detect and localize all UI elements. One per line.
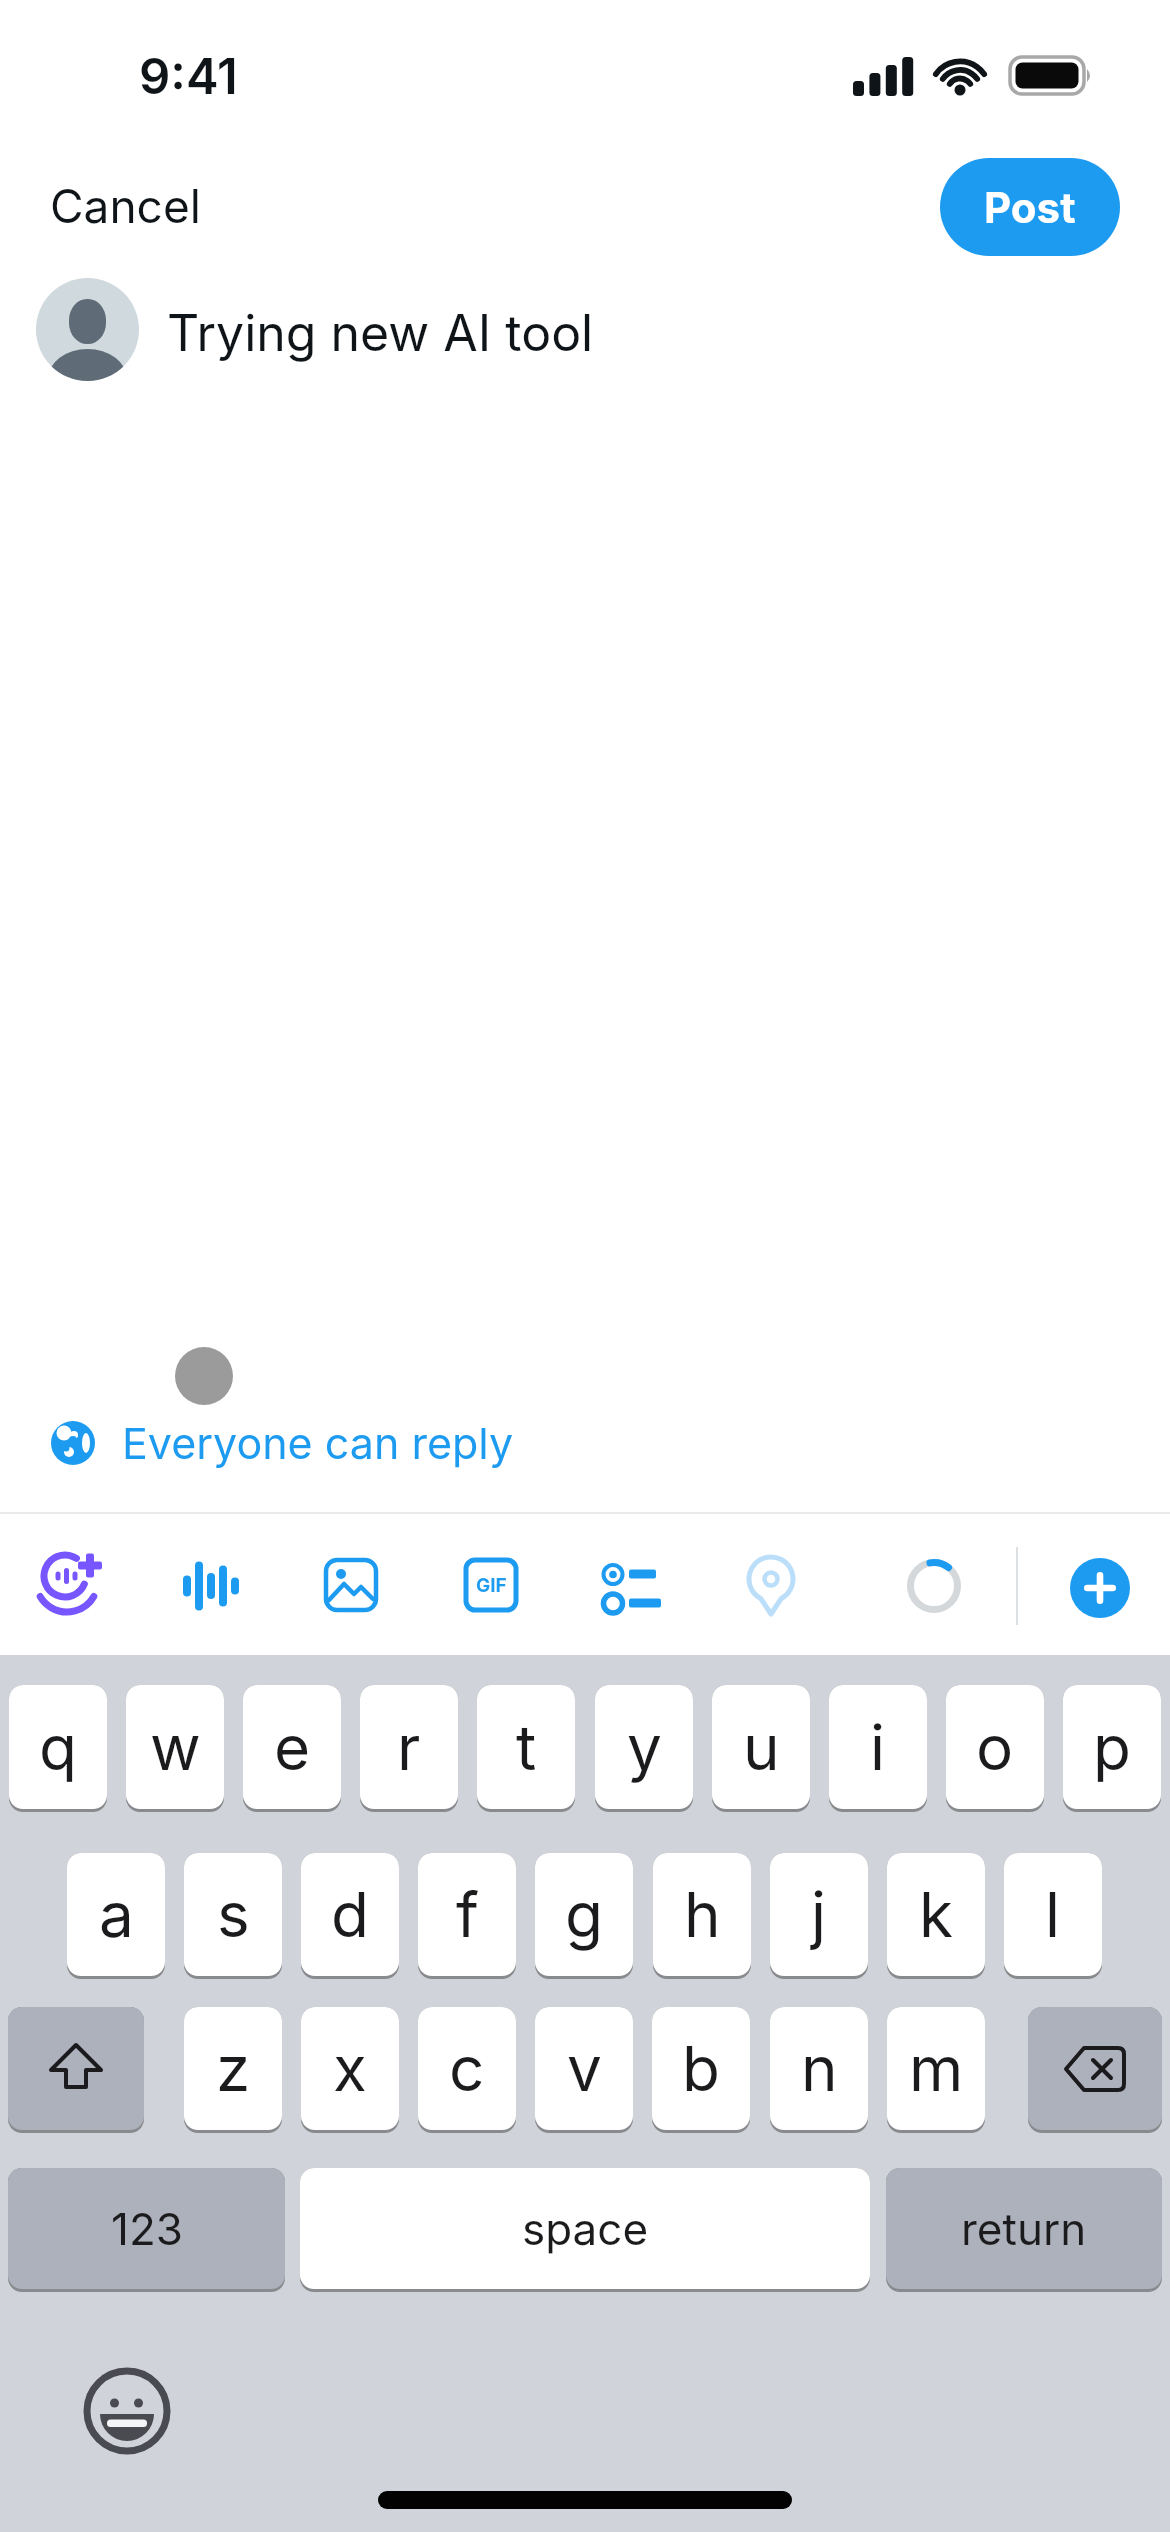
button[interactable]: i bbox=[829, 1685, 927, 1809]
staticText: u bbox=[743, 1710, 780, 1785]
button[interactable]: 123 bbox=[8, 2168, 285, 2289]
button[interactable]: q bbox=[9, 1685, 107, 1809]
button[interactable]: r bbox=[360, 1685, 458, 1809]
button[interactable] bbox=[322, 1556, 380, 1614]
staticText: Cancel bbox=[50, 178, 201, 234]
staticText: m bbox=[909, 2031, 964, 2106]
staticText: l bbox=[1045, 1877, 1061, 1952]
button[interactable]: l bbox=[1004, 1853, 1102, 1976]
staticText: o bbox=[976, 1710, 1014, 1785]
button[interactable] bbox=[598, 1556, 662, 1620]
button[interactable]: m bbox=[887, 2007, 985, 2130]
staticText: x bbox=[333, 2031, 367, 2106]
button[interactable]: GIF bbox=[462, 1556, 520, 1614]
staticText: Everyone can reply bbox=[122, 1417, 514, 1469]
staticText: j bbox=[811, 1877, 827, 1952]
button[interactable] bbox=[1028, 2007, 1162, 2130]
button[interactable]: o bbox=[946, 1685, 1044, 1809]
button[interactable]: c bbox=[418, 2007, 516, 2130]
staticText: h bbox=[684, 1877, 721, 1952]
button[interactable]: h bbox=[653, 1853, 751, 1976]
button[interactable] bbox=[8, 2007, 144, 2130]
staticText: Trying new AI tool bbox=[167, 303, 594, 363]
button[interactable] bbox=[1070, 1558, 1130, 1618]
button[interactable] bbox=[38, 1548, 104, 1614]
button[interactable]: Everyone can reply bbox=[48, 1415, 468, 1471]
button[interactable]: j bbox=[770, 1853, 868, 1976]
button[interactable]: v bbox=[535, 2007, 633, 2130]
staticText: g bbox=[565, 1877, 604, 1952]
button[interactable] bbox=[742, 1552, 802, 1620]
staticText: i bbox=[870, 1710, 886, 1785]
staticText: d bbox=[331, 1877, 369, 1952]
button[interactable]: x bbox=[301, 2007, 399, 2130]
staticText: Post bbox=[984, 182, 1076, 233]
staticText: k bbox=[919, 1877, 954, 1952]
button[interactable]: n bbox=[770, 2007, 868, 2130]
button[interactable]: w bbox=[126, 1685, 224, 1809]
button[interactable]: y bbox=[595, 1685, 693, 1809]
button[interactable]: t bbox=[477, 1685, 575, 1809]
staticText: b bbox=[682, 2031, 720, 2106]
button[interactable]: Cancel bbox=[40, 170, 220, 240]
button[interactable] bbox=[180, 1555, 240, 1615]
staticText: n bbox=[801, 2031, 838, 2106]
staticText: q bbox=[39, 1710, 77, 1785]
staticText: space bbox=[522, 2202, 649, 2255]
button[interactable]: g bbox=[535, 1853, 633, 1976]
button[interactable]: space bbox=[300, 2168, 870, 2289]
button[interactable]: e bbox=[243, 1685, 341, 1809]
staticText: y bbox=[627, 1710, 662, 1785]
staticText: 9:41 bbox=[139, 47, 238, 106]
button[interactable]: b bbox=[652, 2007, 750, 2130]
staticText: e bbox=[274, 1710, 311, 1785]
staticText: return bbox=[961, 2202, 1087, 2255]
staticText: z bbox=[216, 2031, 251, 2106]
staticText: r bbox=[397, 1710, 421, 1785]
button[interactable] bbox=[83, 2367, 171, 2455]
button[interactable]: k bbox=[887, 1853, 985, 1976]
button[interactable]: z bbox=[184, 2007, 282, 2130]
button[interactable]: s bbox=[184, 1853, 282, 1976]
staticText: p bbox=[1093, 1710, 1131, 1785]
staticText: f bbox=[456, 1877, 479, 1952]
staticText: GIF bbox=[476, 1574, 507, 1597]
button[interactable]: d bbox=[301, 1853, 399, 1976]
staticText: t bbox=[516, 1710, 537, 1785]
button[interactable]: u bbox=[712, 1685, 810, 1809]
staticText: s bbox=[217, 1877, 250, 1952]
button[interactable]: return bbox=[886, 2168, 1162, 2289]
staticText: v bbox=[567, 2031, 602, 2106]
staticText: 123 bbox=[111, 2202, 183, 2255]
staticText: w bbox=[150, 1710, 201, 1785]
button[interactable]: a bbox=[67, 1853, 165, 1976]
button[interactable]: p bbox=[1063, 1685, 1161, 1809]
staticText: a bbox=[99, 1877, 134, 1952]
staticText: c bbox=[449, 2031, 485, 2106]
button[interactable]: Post bbox=[940, 158, 1120, 256]
button[interactable]: f bbox=[418, 1853, 516, 1976]
